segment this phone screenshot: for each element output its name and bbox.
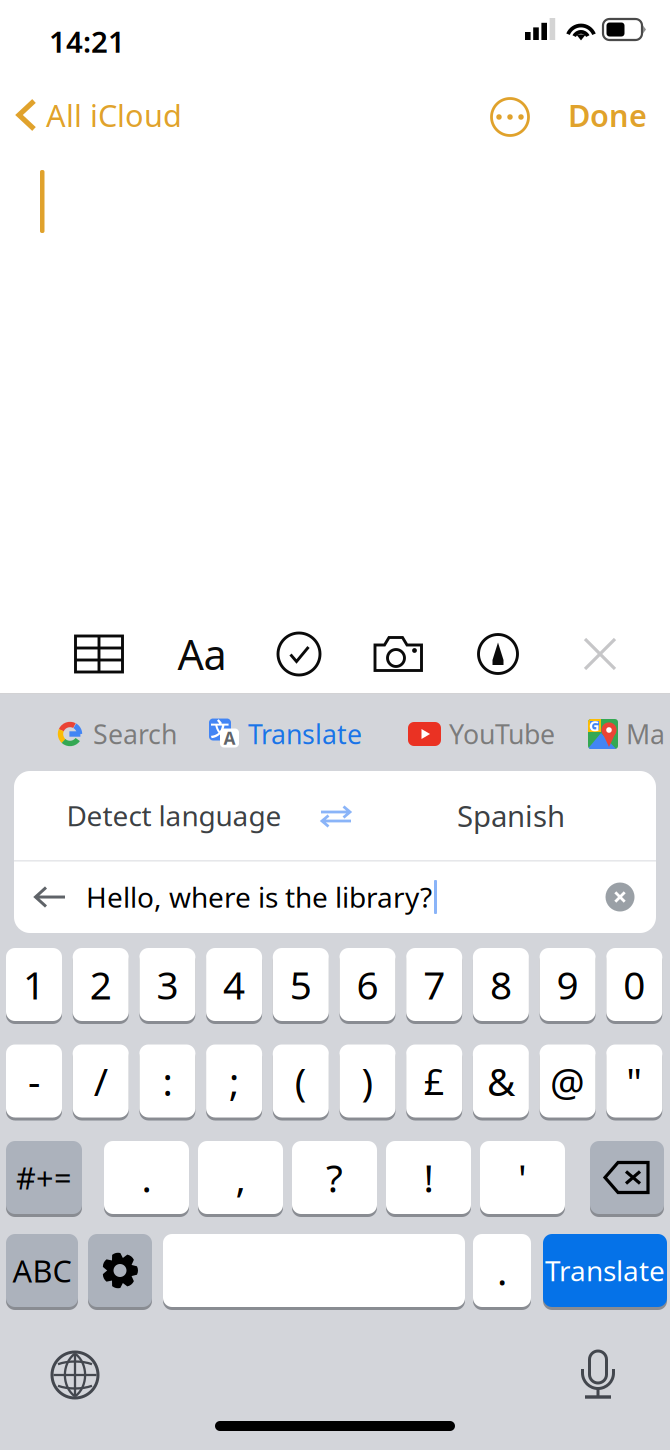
staticText: / bbox=[94, 1055, 108, 1107]
staticText: 14:21 bbox=[49, 22, 125, 61]
button[interactable]: 0 bbox=[0, 948, 56, 1021]
staticText: ABC bbox=[12, 1250, 71, 1291]
staticText: Translate bbox=[545, 1252, 665, 1289]
button[interactable]: Markup bbox=[458, 615, 538, 693]
button[interactable]: Space bbox=[0, 948, 302, 1021]
staticText: ! bbox=[423, 1152, 433, 1203]
button[interactable]: Search bbox=[55, 706, 177, 762]
staticText: @ bbox=[550, 1055, 585, 1107]
button[interactable]: ! bbox=[0, 948, 85, 1021]
button[interactable]: . bbox=[0, 948, 85, 1021]
staticText: . bbox=[141, 1152, 151, 1203]
staticText: G bbox=[589, 716, 600, 735]
button[interactable]: More bbox=[477, 86, 543, 148]
button[interactable]: 8 bbox=[0, 948, 56, 1021]
button[interactable]: G bbox=[588, 706, 665, 762]
staticText: 6 bbox=[356, 959, 378, 1010]
staticText: Search bbox=[93, 716, 177, 752]
button[interactable]: Translate bbox=[0, 948, 124, 1021]
button[interactable]: #+= bbox=[0, 948, 76, 1021]
staticText: ; bbox=[229, 1055, 239, 1107]
button[interactable]: 文 bbox=[209, 706, 362, 762]
button[interactable]: Dictation bbox=[552, 1335, 644, 1415]
staticText: #+= bbox=[16, 1157, 72, 1198]
button[interactable]: ? bbox=[0, 948, 85, 1021]
staticText: YouTube bbox=[449, 716, 555, 752]
button[interactable]: Checklist bbox=[259, 615, 339, 693]
button[interactable]: ' bbox=[0, 948, 85, 1021]
button[interactable]: ( bbox=[0, 948, 56, 1021]
button[interactable]: ) bbox=[0, 948, 56, 1021]
staticText: 1 bbox=[23, 959, 45, 1010]
button[interactable]: " bbox=[0, 948, 56, 1021]
button[interactable]: Back bbox=[14, 861, 86, 933]
button[interactable]: ; bbox=[0, 948, 56, 1021]
staticText: 2 bbox=[90, 959, 112, 1010]
staticText: Aa bbox=[177, 627, 226, 681]
button[interactable]: / bbox=[0, 948, 56, 1021]
staticText: 7 bbox=[423, 959, 445, 1010]
staticText: ( bbox=[295, 1055, 307, 1107]
button[interactable]: Next keyboard bbox=[29, 1335, 121, 1415]
staticText: 8 bbox=[490, 959, 512, 1010]
button[interactable]: . bbox=[0, 948, 58, 1021]
staticText: £ bbox=[424, 1057, 445, 1105]
staticText: ' bbox=[518, 1152, 527, 1203]
button[interactable]: : bbox=[0, 948, 56, 1021]
button[interactable]: Keyboard settings bbox=[0, 948, 64, 1021]
button[interactable]: - bbox=[0, 948, 56, 1021]
button[interactable]: @ bbox=[0, 948, 56, 1021]
button[interactable]: , bbox=[0, 948, 85, 1021]
button[interactable]: Table bbox=[59, 615, 139, 693]
staticText: 3 bbox=[156, 959, 178, 1010]
staticText: 5 bbox=[290, 959, 312, 1010]
staticText: 文 bbox=[210, 718, 229, 741]
staticText: ? bbox=[326, 1152, 343, 1203]
staticText: Ma bbox=[626, 716, 665, 752]
staticText: A bbox=[223, 726, 235, 749]
staticText: , bbox=[235, 1152, 245, 1203]
staticText: 0 bbox=[623, 959, 645, 1010]
button[interactable]: Hide keyboard bbox=[560, 615, 640, 693]
button[interactable]: Done bbox=[568, 84, 658, 146]
staticText: " bbox=[626, 1055, 642, 1107]
staticText: Detect language bbox=[66, 797, 281, 834]
button[interactable]: Camera bbox=[359, 615, 439, 693]
button[interactable]: Clear bbox=[584, 861, 656, 933]
staticText: All iCloud bbox=[46, 95, 182, 135]
staticText: Spanish bbox=[457, 796, 565, 835]
button[interactable]: Delete bbox=[0, 948, 74, 1021]
staticText: . bbox=[497, 1245, 507, 1296]
staticText: Hello, where is the library? bbox=[86, 878, 432, 916]
button[interactable]: 2 bbox=[0, 948, 56, 1021]
button[interactable]: ABC bbox=[0, 948, 72, 1021]
staticText: - bbox=[28, 1055, 40, 1107]
button[interactable]: Format bbox=[162, 615, 242, 693]
button[interactable]: Spanish bbox=[366, 771, 656, 860]
button[interactable]: 1 bbox=[0, 948, 56, 1021]
button[interactable]: £ bbox=[0, 948, 56, 1021]
staticText: : bbox=[162, 1055, 172, 1107]
button[interactable]: 4 bbox=[0, 948, 56, 1021]
button[interactable]: All iCloud bbox=[15, 84, 205, 146]
staticText: ) bbox=[361, 1055, 373, 1107]
button[interactable]: YouTube bbox=[408, 706, 555, 762]
button[interactable]: & bbox=[0, 948, 56, 1021]
button[interactable]: 3 bbox=[0, 948, 56, 1021]
button[interactable]: Detect language bbox=[24, 771, 324, 860]
staticText: & bbox=[487, 1055, 515, 1107]
button[interactable]: 9 bbox=[0, 948, 56, 1021]
button[interactable]: 5 bbox=[0, 948, 56, 1021]
button[interactable]: 6 bbox=[0, 948, 56, 1021]
staticText: Done bbox=[568, 95, 647, 135]
staticText: Translate bbox=[248, 716, 362, 752]
staticText: 9 bbox=[557, 959, 579, 1010]
button[interactable]: 7 bbox=[0, 948, 56, 1021]
staticText: 4 bbox=[223, 959, 245, 1010]
